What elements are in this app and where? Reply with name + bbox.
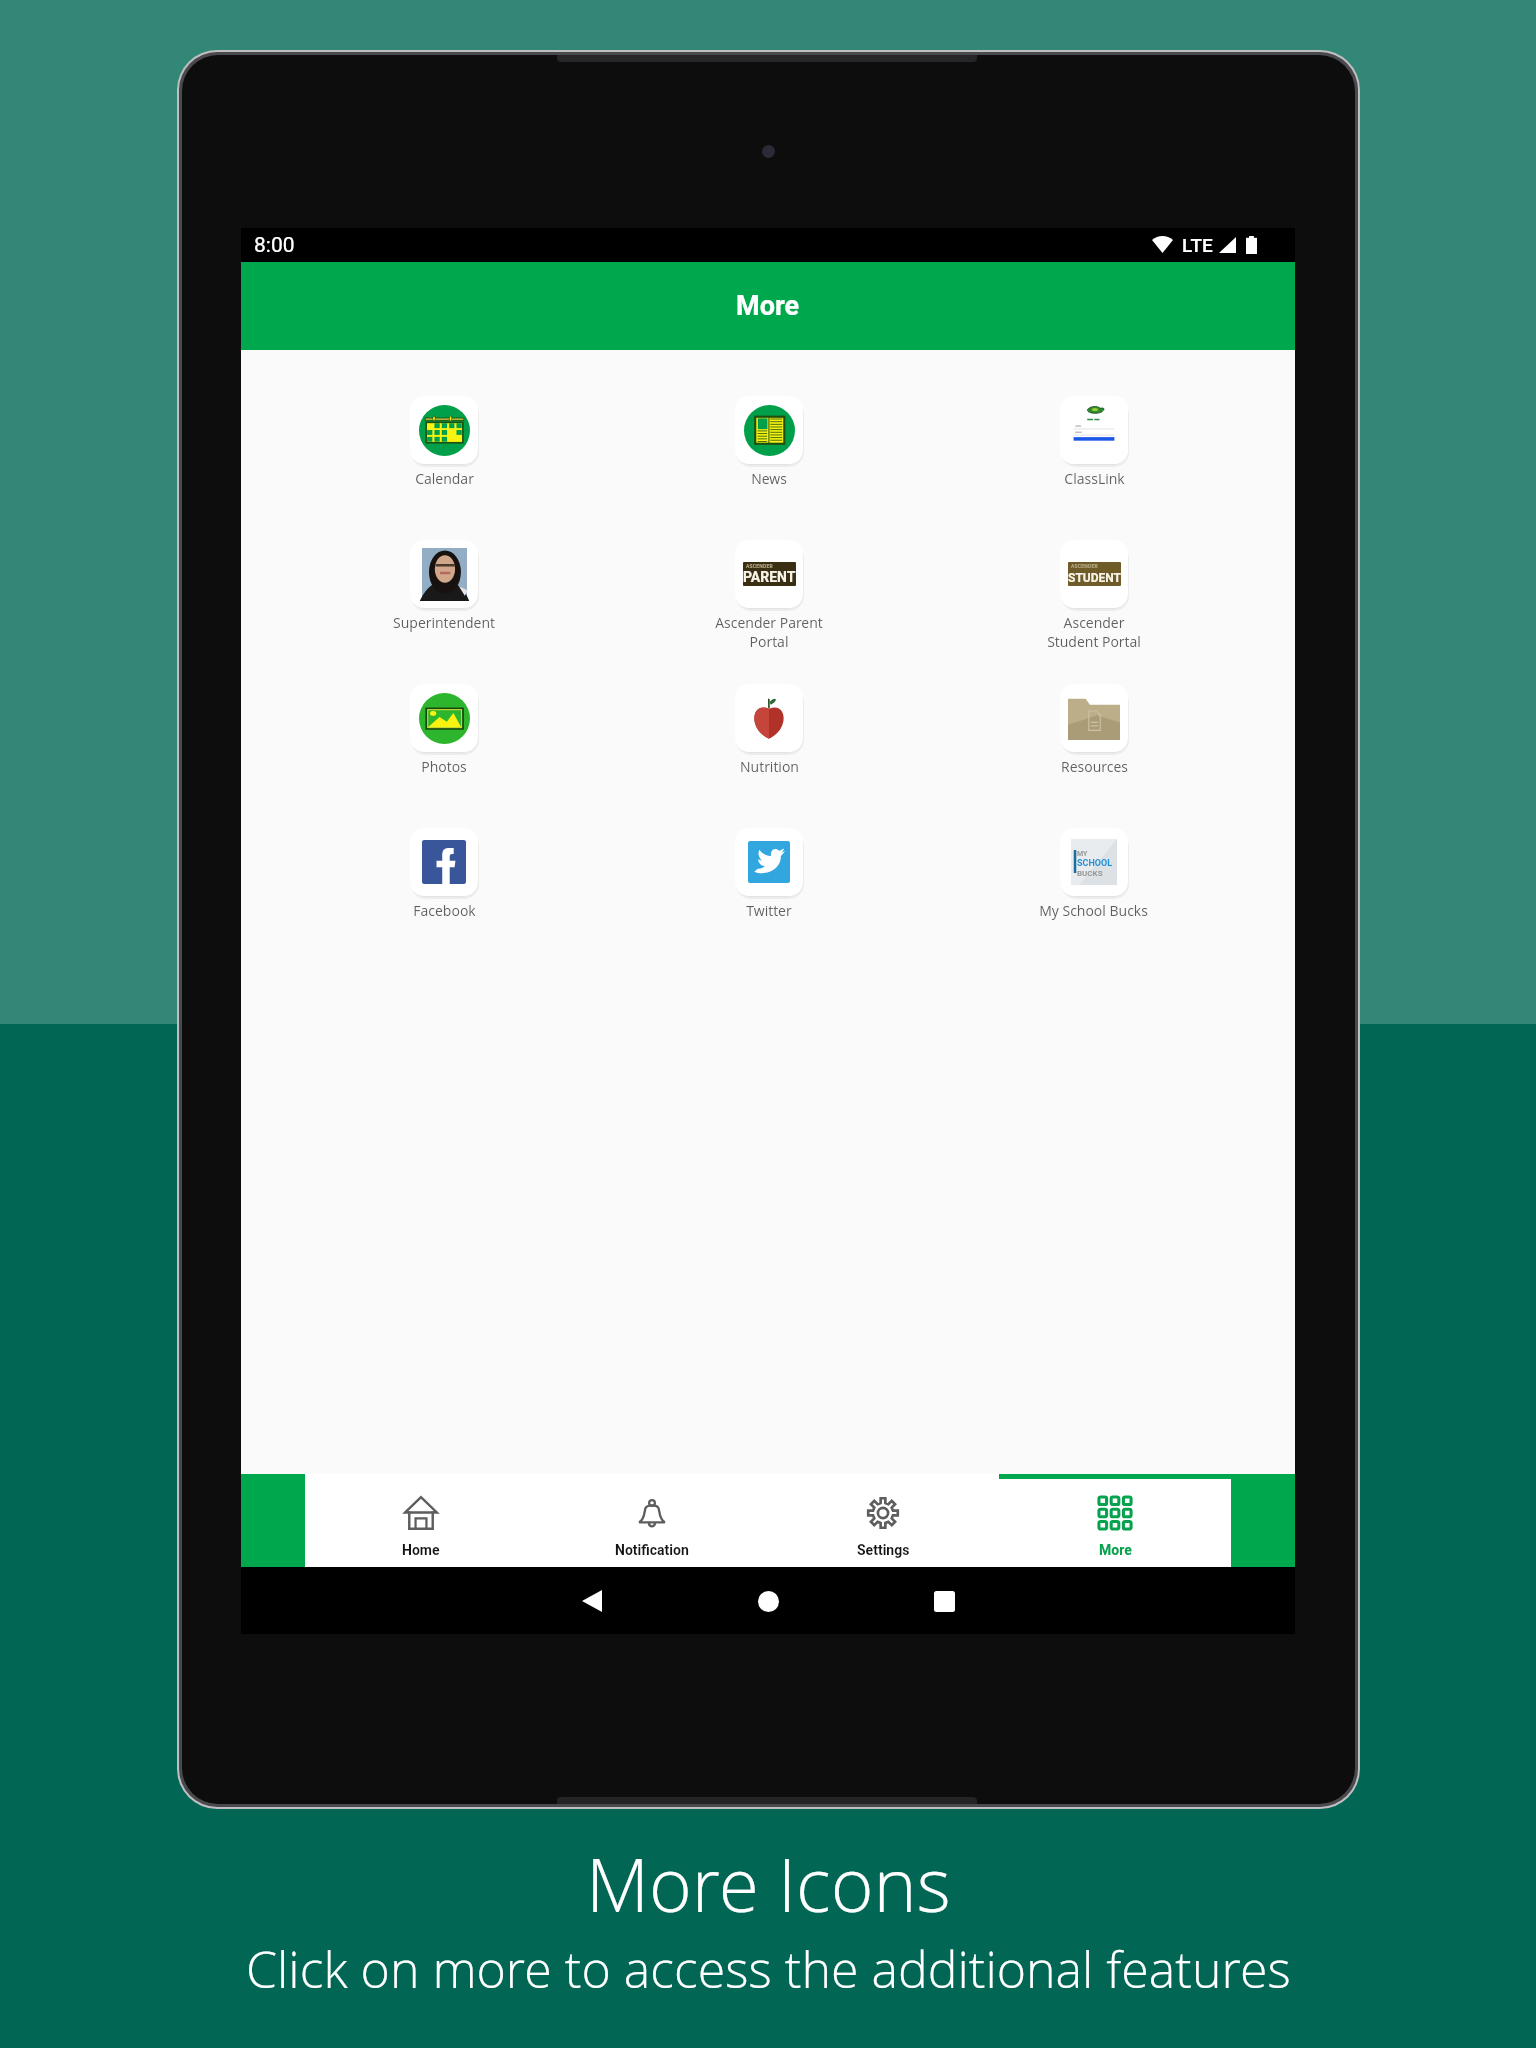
button[interactable]: ASCENDER (715, 540, 823, 651)
button[interactable]: Home (305, 1474, 536, 1567)
staticText: Ascender Parent Portal (715, 613, 823, 651)
staticText: Home (402, 1542, 440, 1558)
staticText: SCHOOL (1077, 858, 1113, 869)
staticText: ClassLink (1064, 469, 1125, 488)
staticText: Photos (421, 757, 467, 776)
staticText: Twitter (746, 901, 792, 920)
button[interactable]: Home (746, 1579, 790, 1623)
staticText: BUCKS (1077, 869, 1103, 878)
button[interactable]: Calendar (410, 396, 478, 488)
button[interactable]: Resources (1060, 684, 1128, 776)
staticText: My School Bucks (1039, 901, 1148, 920)
button[interactable]: Twitter (735, 828, 803, 920)
button[interactable]: More (999, 1474, 1231, 1567)
button[interactable]: Recent apps (922, 1579, 966, 1623)
staticText: More (1099, 1542, 1132, 1558)
staticText: Resources (1061, 757, 1128, 776)
button[interactable]: News (735, 396, 803, 488)
staticText: Calendar (415, 469, 474, 488)
button[interactable]: ClassLink (1060, 396, 1128, 488)
staticText: Ascender Student Portal (1047, 613, 1141, 651)
button[interactable]: MY (1039, 828, 1148, 920)
staticText: STUDENT (1068, 571, 1121, 585)
button[interactable]: Back (570, 1579, 614, 1623)
staticText: Click on more to access the additional f… (246, 1935, 1291, 2003)
staticText: ASCENDER (1071, 563, 1098, 569)
staticText: Notification (615, 1542, 689, 1558)
staticText: LTE (1182, 234, 1213, 256)
staticText: Facebook (413, 901, 476, 920)
button[interactable]: Settings (767, 1474, 999, 1567)
staticText: 8:00 (254, 233, 295, 258)
button[interactable]: ASCENDER (1047, 540, 1141, 651)
staticText: MY (1077, 850, 1088, 858)
staticText: News (751, 469, 787, 488)
staticText: PARENT (743, 569, 796, 585)
staticText: More Icons (586, 1834, 951, 1933)
staticText: Superintendent (393, 613, 495, 632)
staticText: Nutrition (740, 757, 799, 776)
staticText: Settings (857, 1542, 910, 1558)
button[interactable]: Nutrition (735, 684, 803, 776)
staticText: ASCENDER (746, 563, 773, 569)
staticText: More (736, 290, 800, 322)
button[interactable]: Photos (410, 684, 478, 776)
button[interactable]: Facebook (410, 828, 478, 920)
button[interactable]: Superintendent (393, 540, 495, 632)
button[interactable]: Notification (536, 1474, 767, 1567)
